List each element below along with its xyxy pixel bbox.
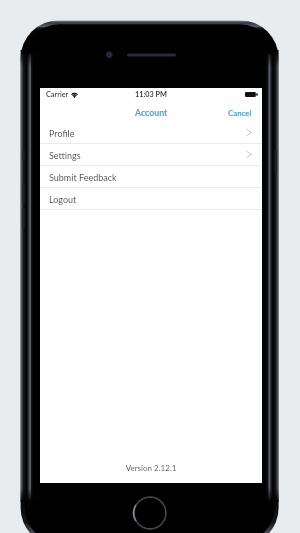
button[interactable]: Submit Feedback: [40, 166, 262, 187]
staticText: Submit Feedback: [49, 172, 117, 183]
button[interactable]: Settings: [40, 144, 262, 165]
staticText: Version 2.12.1: [40, 463, 262, 473]
button[interactable]: Profile: [40, 122, 262, 143]
staticText: 11:03 PM: [135, 90, 167, 99]
staticText: Carrier: [46, 90, 69, 99]
staticText: Profile: [49, 128, 75, 139]
staticText: Account: [135, 107, 168, 118]
button[interactable]: Logout: [40, 188, 262, 209]
staticText: Cancel: [228, 108, 252, 117]
staticText: Logout: [49, 194, 77, 205]
button[interactable]: Cancel: [218, 105, 262, 120]
staticText: Settings: [49, 150, 81, 161]
